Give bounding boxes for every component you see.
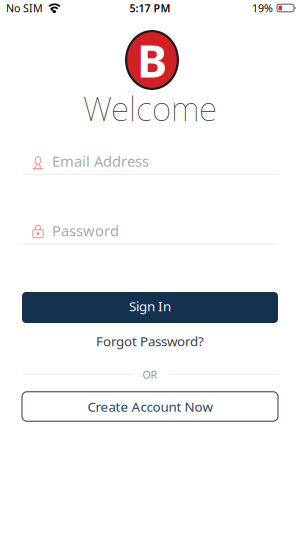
button[interactable]: Sign In	[22, 292, 278, 323]
staticText: Sign In	[129, 297, 171, 315]
staticText: 5:17 PM	[129, 1, 170, 15]
staticText: Welcome	[83, 86, 217, 130]
staticText: 19%	[252, 1, 273, 15]
button[interactable]: Forgot Password?	[96, 332, 204, 350]
staticText: Forgot Password?	[96, 332, 204, 350]
staticText: Email Address	[52, 151, 149, 171]
staticText: No SIM	[6, 1, 43, 15]
staticText: Password	[52, 221, 119, 240]
staticText: OR	[142, 367, 157, 382]
button[interactable]: Create Account Now	[22, 392, 278, 421]
button[interactable]: Password	[22, 217, 278, 244]
staticText: B	[137, 30, 167, 90]
button[interactable]: Email Address	[22, 148, 278, 175]
staticText: Create Account Now	[87, 398, 212, 415]
